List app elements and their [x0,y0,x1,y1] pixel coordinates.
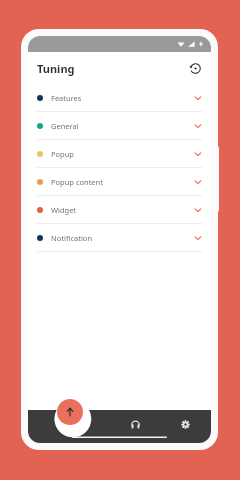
staticText: Popup content [51,177,103,187]
staticText: Widget [51,205,77,215]
button[interactable]: Settings [176,415,194,433]
button[interactable]: Audio [126,415,144,433]
button[interactable]: Notification [28,224,211,251]
button[interactable]: Scroll to top [57,399,83,425]
staticText: Features [51,93,82,103]
button[interactable]: Popup [28,140,211,167]
staticText: General [51,121,79,131]
staticText: Popup [51,149,74,159]
button[interactable]: Restore defaults [185,58,205,78]
button[interactable]: Widget [28,196,211,223]
staticText: Tuning [37,61,75,76]
button[interactable]: Features [28,84,211,111]
staticText: Notification [51,233,93,243]
button[interactable]: Popup content [28,168,211,195]
button[interactable]: General [28,112,211,139]
